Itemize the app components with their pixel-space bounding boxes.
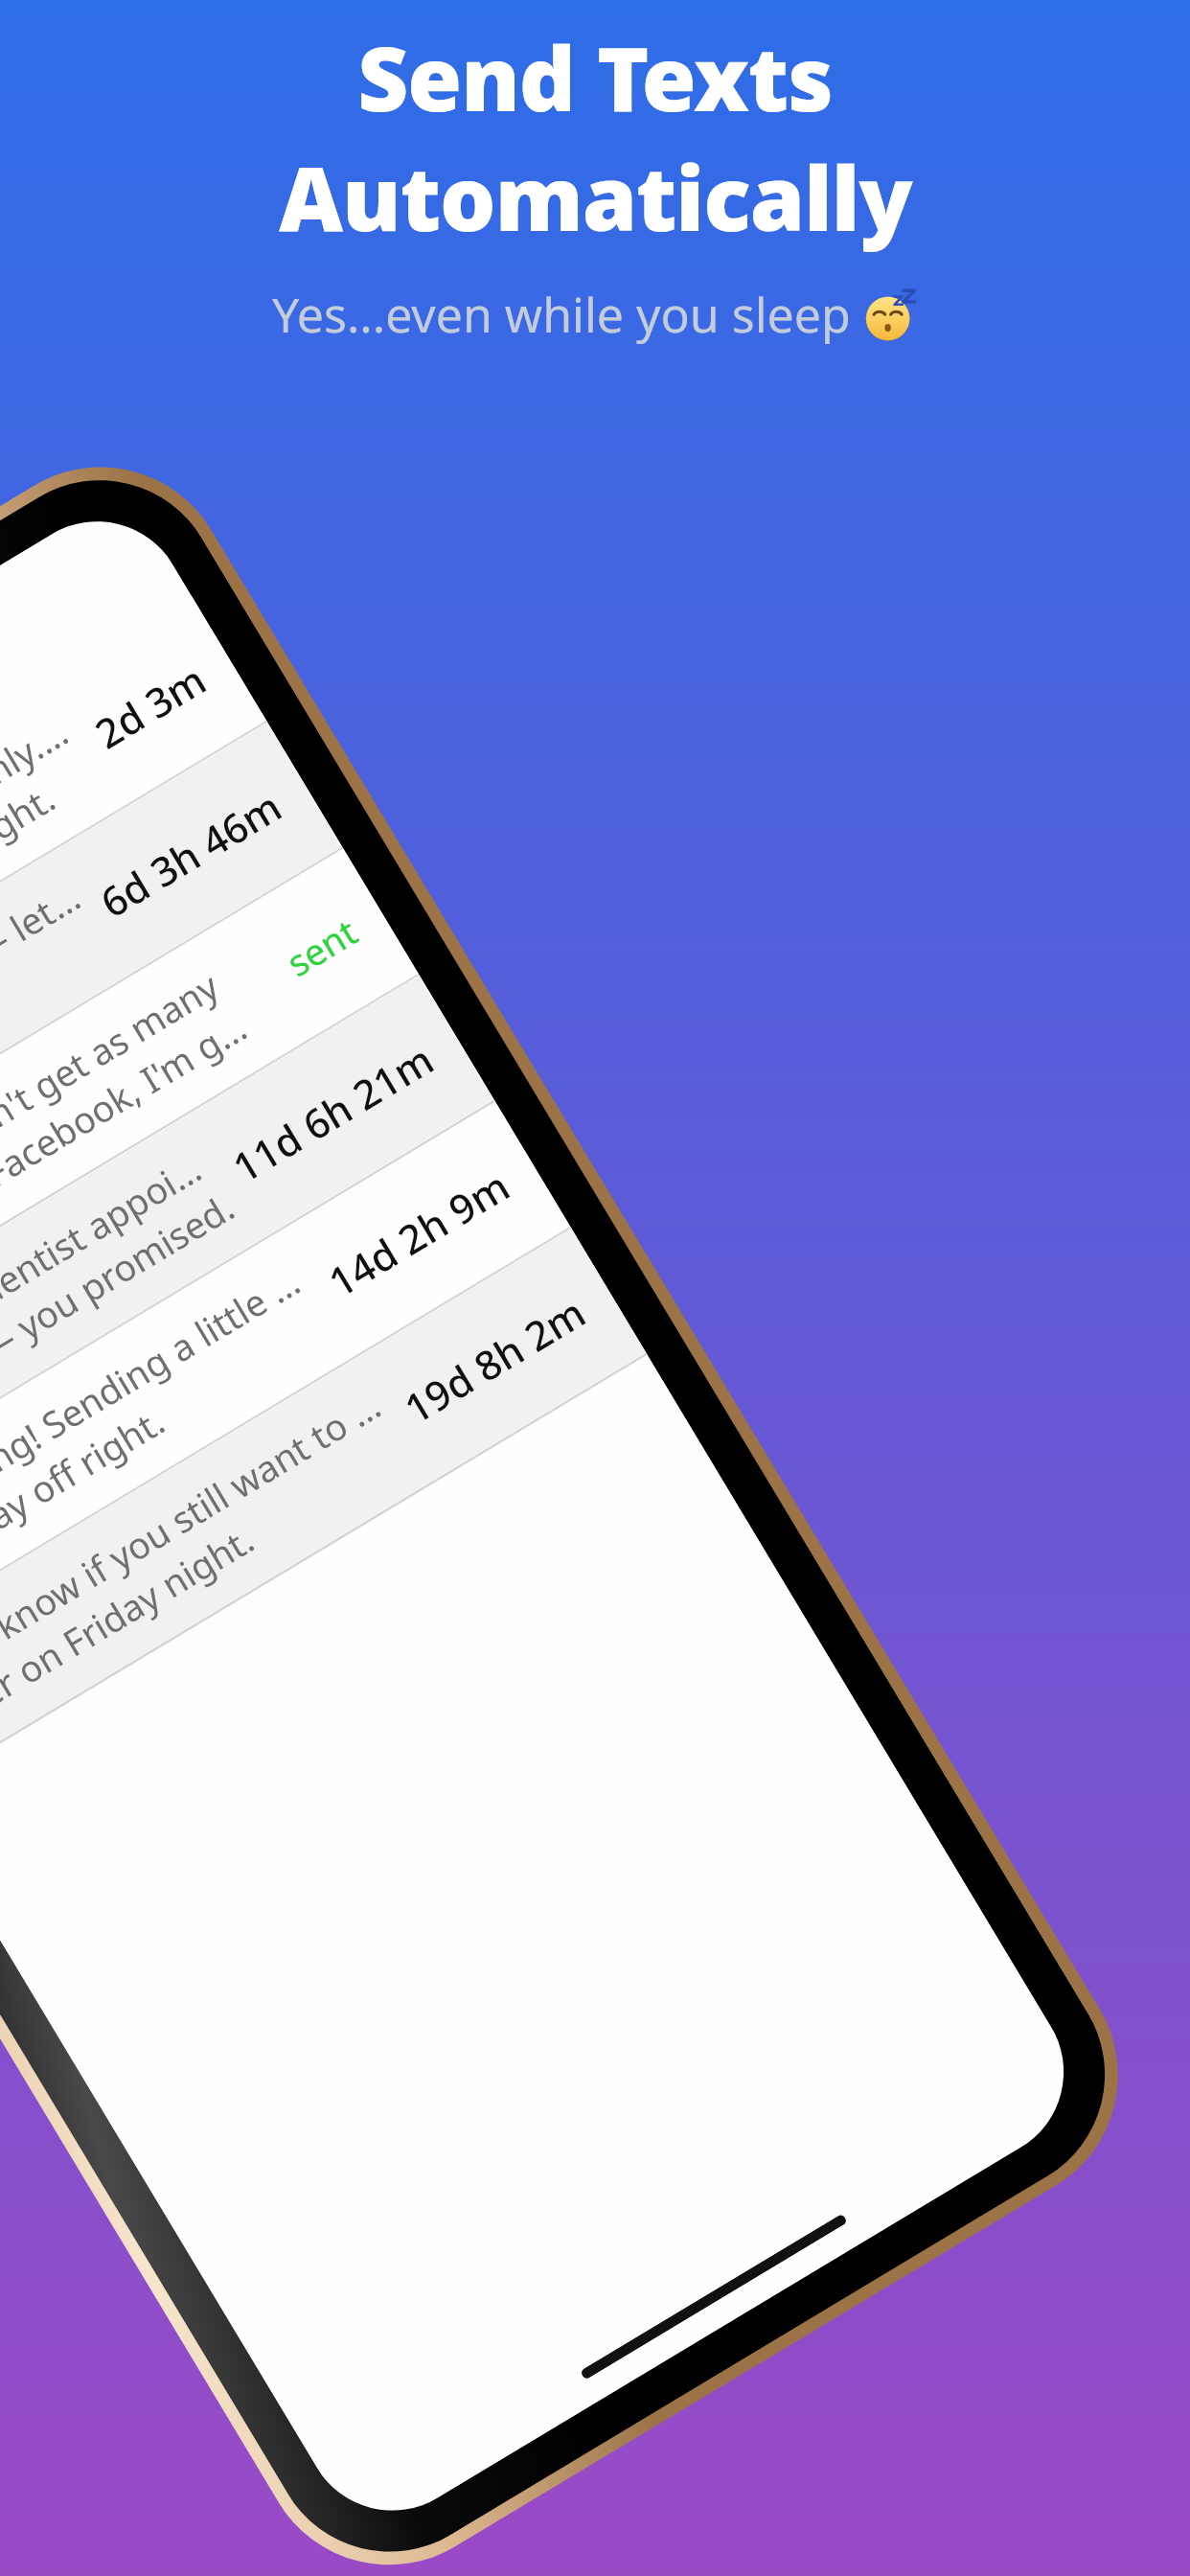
button[interactable]: It was so good seeing you — let's do tha… [0, 722, 343, 1290]
staticText: Yes...even while you sleep [272, 282, 851, 347]
staticText: 2d 3m [85, 652, 215, 760]
staticText: 14d 2h 9m [318, 1158, 519, 1309]
staticText: dinner on Friday night. [0, 1514, 262, 1758]
staticText: It was so good seeing you — let's do tha… [0, 872, 89, 1209]
staticText: Let me know if you still want to grab [0, 1378, 393, 1715]
staticText: me when you get a chance tonight. [0, 772, 64, 1125]
button[interactable]: Scheduled messages list [0, 419, 1166, 2576]
staticText: 19d 8h 2m [394, 1284, 595, 1435]
staticText: Good morning! Sending a little note to [0, 1251, 317, 1588]
staticText: start the day off right. [0, 1395, 173, 1631]
button[interactable]: Happy birthday! If I don't get as many [0, 849, 419, 1416]
staticText: tomorrow at 3 — you promised. [0, 1182, 243, 1505]
staticText: 6d 3h 46m [90, 778, 291, 929]
button[interactable]: Hey! Hope the move went smoothly. Call [0, 596, 267, 1163]
staticText: Hey! Hope the move went smoothly. Call [0, 703, 84, 1082]
staticText: 11d 6h 21m [222, 1031, 443, 1194]
staticText: sent [277, 906, 366, 987]
staticText: likes here as I do on Facebook, I'm g... [0, 1002, 255, 1378]
button[interactable]: Good morning! Sending a little note to [0, 1102, 571, 1669]
staticText: Send Texts [357, 17, 833, 137]
staticText: Happy birthday! If I don't get as many [0, 961, 227, 1335]
staticText: Don't forget the dentist appointment [0, 1136, 221, 1462]
staticText: Automatically [279, 137, 912, 257]
button[interactable]: Let me know if you still want to grab [0, 1228, 647, 1796]
button[interactable]: Don't forget the dentist appointment [0, 975, 495, 1543]
